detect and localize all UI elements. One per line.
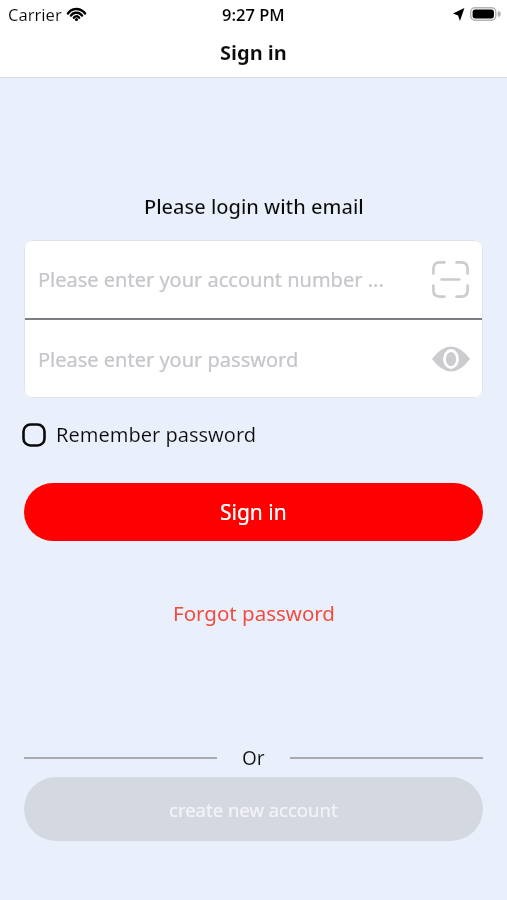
- button[interactable]: Sign in: [24, 483, 483, 541]
- button[interactable]: Please enter your password: [24, 320, 483, 398]
- button[interactable]: create new account: [24, 777, 483, 841]
- staticText: create new account: [169, 797, 338, 822]
- staticText: Carrier: [8, 3, 62, 25]
- button[interactable]: Remember password: [22, 421, 257, 448]
- staticText: 9:27 PM: [222, 3, 285, 25]
- staticText: Remember password: [56, 421, 257, 448]
- button[interactable]: [432, 261, 469, 298]
- button[interactable]: [432, 347, 470, 371]
- staticText: Please login with email: [144, 193, 364, 220]
- button[interactable]: Please enter your account number ...: [24, 240, 483, 318]
- staticText: Forgot password: [173, 599, 335, 627]
- staticText: Or: [242, 745, 265, 771]
- staticText: Please enter your password: [38, 346, 432, 373]
- staticText: Please enter your account number ...: [38, 266, 432, 293]
- staticText: Sign in: [220, 498, 287, 527]
- button[interactable]: Forgot password: [161, 587, 347, 639]
- staticText: Sign in: [220, 39, 287, 66]
